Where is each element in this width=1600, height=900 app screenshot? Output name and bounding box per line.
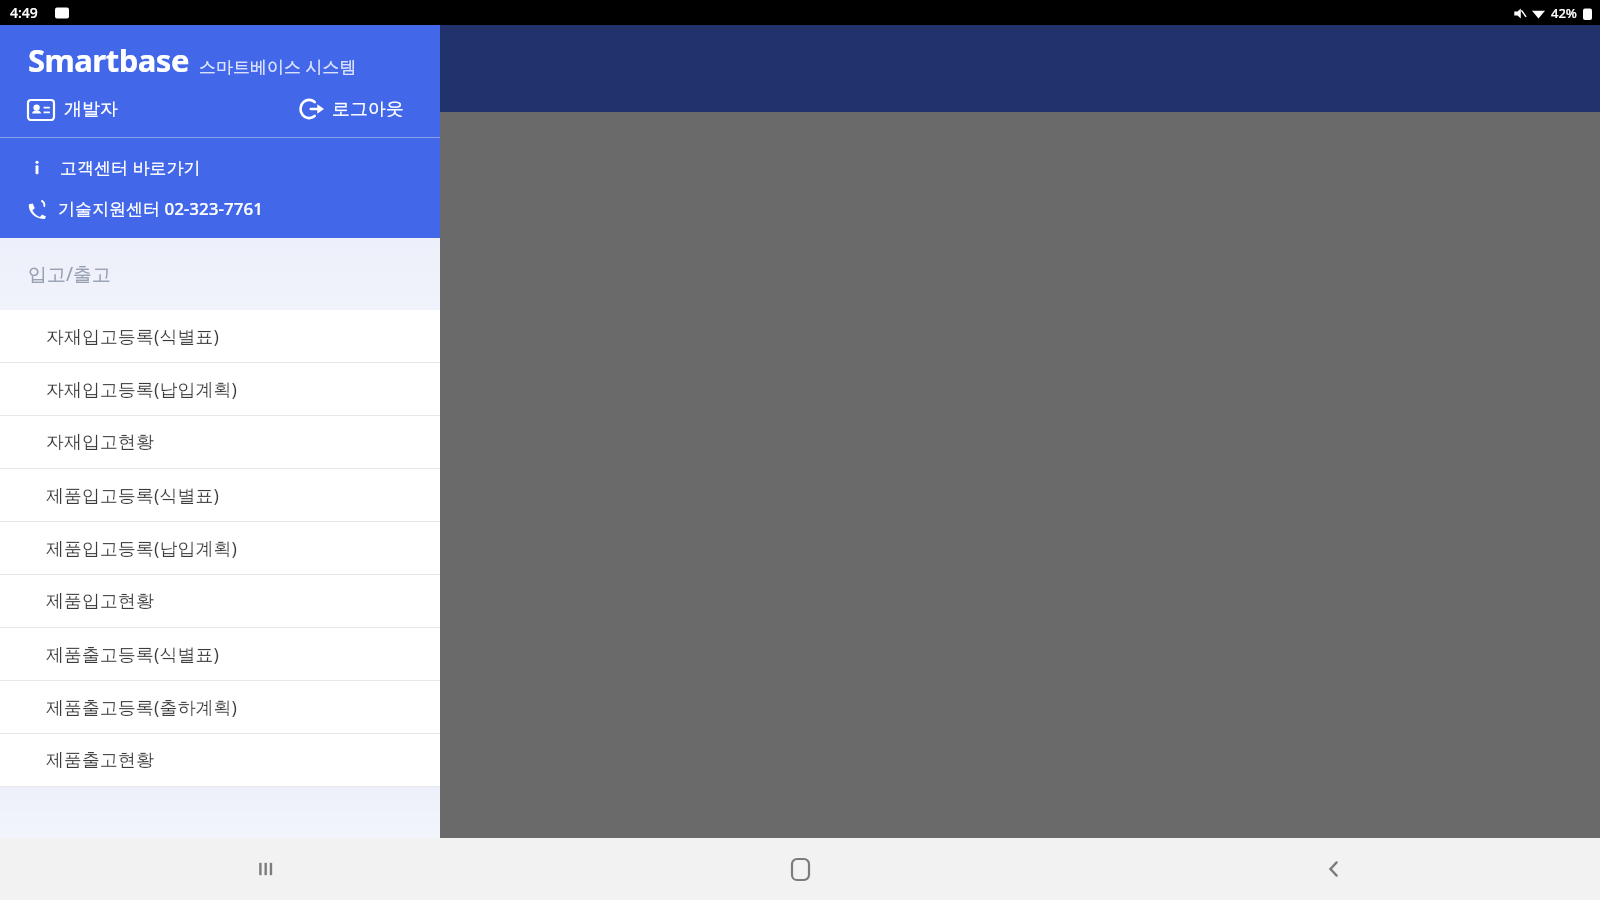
staticText: 입고/출고 <box>28 261 112 287</box>
staticText: 제품입고등록(식별표) <box>46 483 219 508</box>
button[interactable]: 자재입고현황 <box>0 416 440 469</box>
staticText: 4:49 <box>10 3 38 22</box>
staticText: 제품출고등록(출하계획) <box>46 695 237 720</box>
button[interactable]: 자재입고등록(납입계획) <box>0 363 440 416</box>
button[interactable]: 기술지원센터 02-323-7761 <box>0 195 440 222</box>
staticText: 자재입고등록(식별표) <box>46 324 219 349</box>
staticText: 스마트베이스 시스템 <box>199 55 357 78</box>
button[interactable]: 자재입고등록(식별표) <box>0 310 440 363</box>
staticText: 제품출고현황 <box>46 749 154 772</box>
staticText: 자재입고현황 <box>46 431 154 454</box>
staticText: 고객센터 바로가기 <box>60 156 201 179</box>
staticText: 개발자 <box>64 98 118 121</box>
button[interactable]: 제품출고현황 <box>0 734 440 787</box>
button[interactable]: Recent apps <box>0 838 534 900</box>
button[interactable]: Home <box>534 838 1067 900</box>
button[interactable]: 제품출고등록(출하계획) <box>0 681 440 734</box>
staticText: 42% <box>1551 4 1577 22</box>
staticText: Smartbase <box>28 39 189 81</box>
staticText: 제품입고등록(납입계획) <box>46 536 237 561</box>
button[interactable]: 입고/출고 <box>0 238 440 310</box>
button[interactable]: 개발자 <box>26 94 120 125</box>
button[interactable]: 제품입고현황 <box>0 575 440 628</box>
button[interactable]: 제품출고등록(식별표) <box>0 628 440 681</box>
button[interactable]: 제품입고등록(식별표) <box>0 469 440 522</box>
staticText: 로그아웃 <box>332 98 404 121</box>
staticText: 제품입고현황 <box>46 590 154 613</box>
button[interactable]: Back <box>1067 838 1600 900</box>
staticText: 제품출고등록(식별표) <box>46 642 219 667</box>
button[interactable]: 로그아웃 <box>298 93 406 125</box>
staticText: 기술지원센터 02-323-7761 <box>58 197 263 220</box>
staticText: 자재입고등록(납입계획) <box>46 377 237 402</box>
button[interactable]: 고객센터 바로가기 <box>0 154 440 181</box>
button[interactable]: 제품입고등록(납입계획) <box>0 522 440 575</box>
